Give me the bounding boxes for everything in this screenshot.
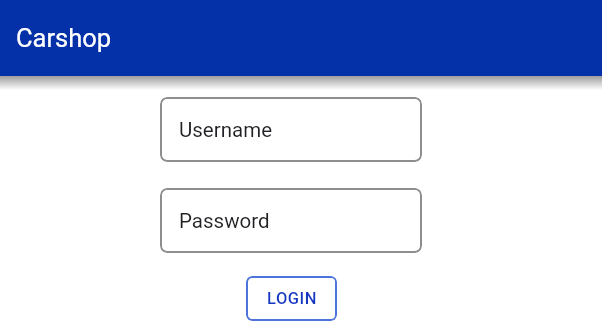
button[interactable]: Username	[160, 97, 422, 162]
button[interactable]: Password	[160, 188, 422, 253]
staticText: Username	[179, 118, 273, 142]
staticText: Carshop	[16, 23, 112, 53]
button[interactable]: LOGIN	[246, 276, 337, 321]
staticText: LOGIN	[267, 289, 317, 308]
staticText: Password	[179, 209, 270, 233]
